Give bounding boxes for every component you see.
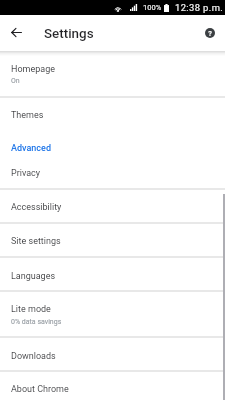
staticText: Languages — [11, 271, 56, 282]
staticText: Accessibility — [11, 202, 62, 213]
button[interactable]: About Chrome — [0, 371, 225, 400]
staticText: Homepage — [11, 64, 55, 75]
staticText: 100% — [143, 3, 162, 12]
button[interactable]: Lite mode — [0, 291, 225, 337]
button[interactable]: Site settings — [0, 222, 225, 257]
staticText: Advanced — [11, 143, 51, 154]
staticText: Downloads — [11, 351, 56, 362]
staticText: 0% data savings — [11, 318, 62, 326]
button[interactable]: Homepage — [0, 51, 225, 97]
button[interactable]: Languages — [0, 258, 225, 291]
staticText: Themes — [11, 110, 44, 121]
staticText: Privacy — [11, 168, 41, 179]
staticText: On — [11, 77, 20, 85]
staticText: Settings — [44, 26, 94, 42]
button[interactable]: Accessibility — [0, 189, 225, 223]
button[interactable]: Advanced — [0, 130, 225, 155]
staticText: Lite mode — [11, 304, 51, 315]
staticText: ? — [208, 29, 212, 38]
button[interactable]: Themes — [0, 97, 225, 131]
button[interactable]: Downloads — [0, 337, 225, 371]
staticText: 12:38 p.m. — [175, 2, 224, 13]
button[interactable]: Back — [0, 17, 33, 50]
staticText: About Chrome — [11, 384, 69, 395]
button[interactable]: Privacy — [0, 155, 225, 189]
button[interactable]: Help — [195, 18, 225, 48]
staticText: Site settings — [11, 236, 61, 247]
